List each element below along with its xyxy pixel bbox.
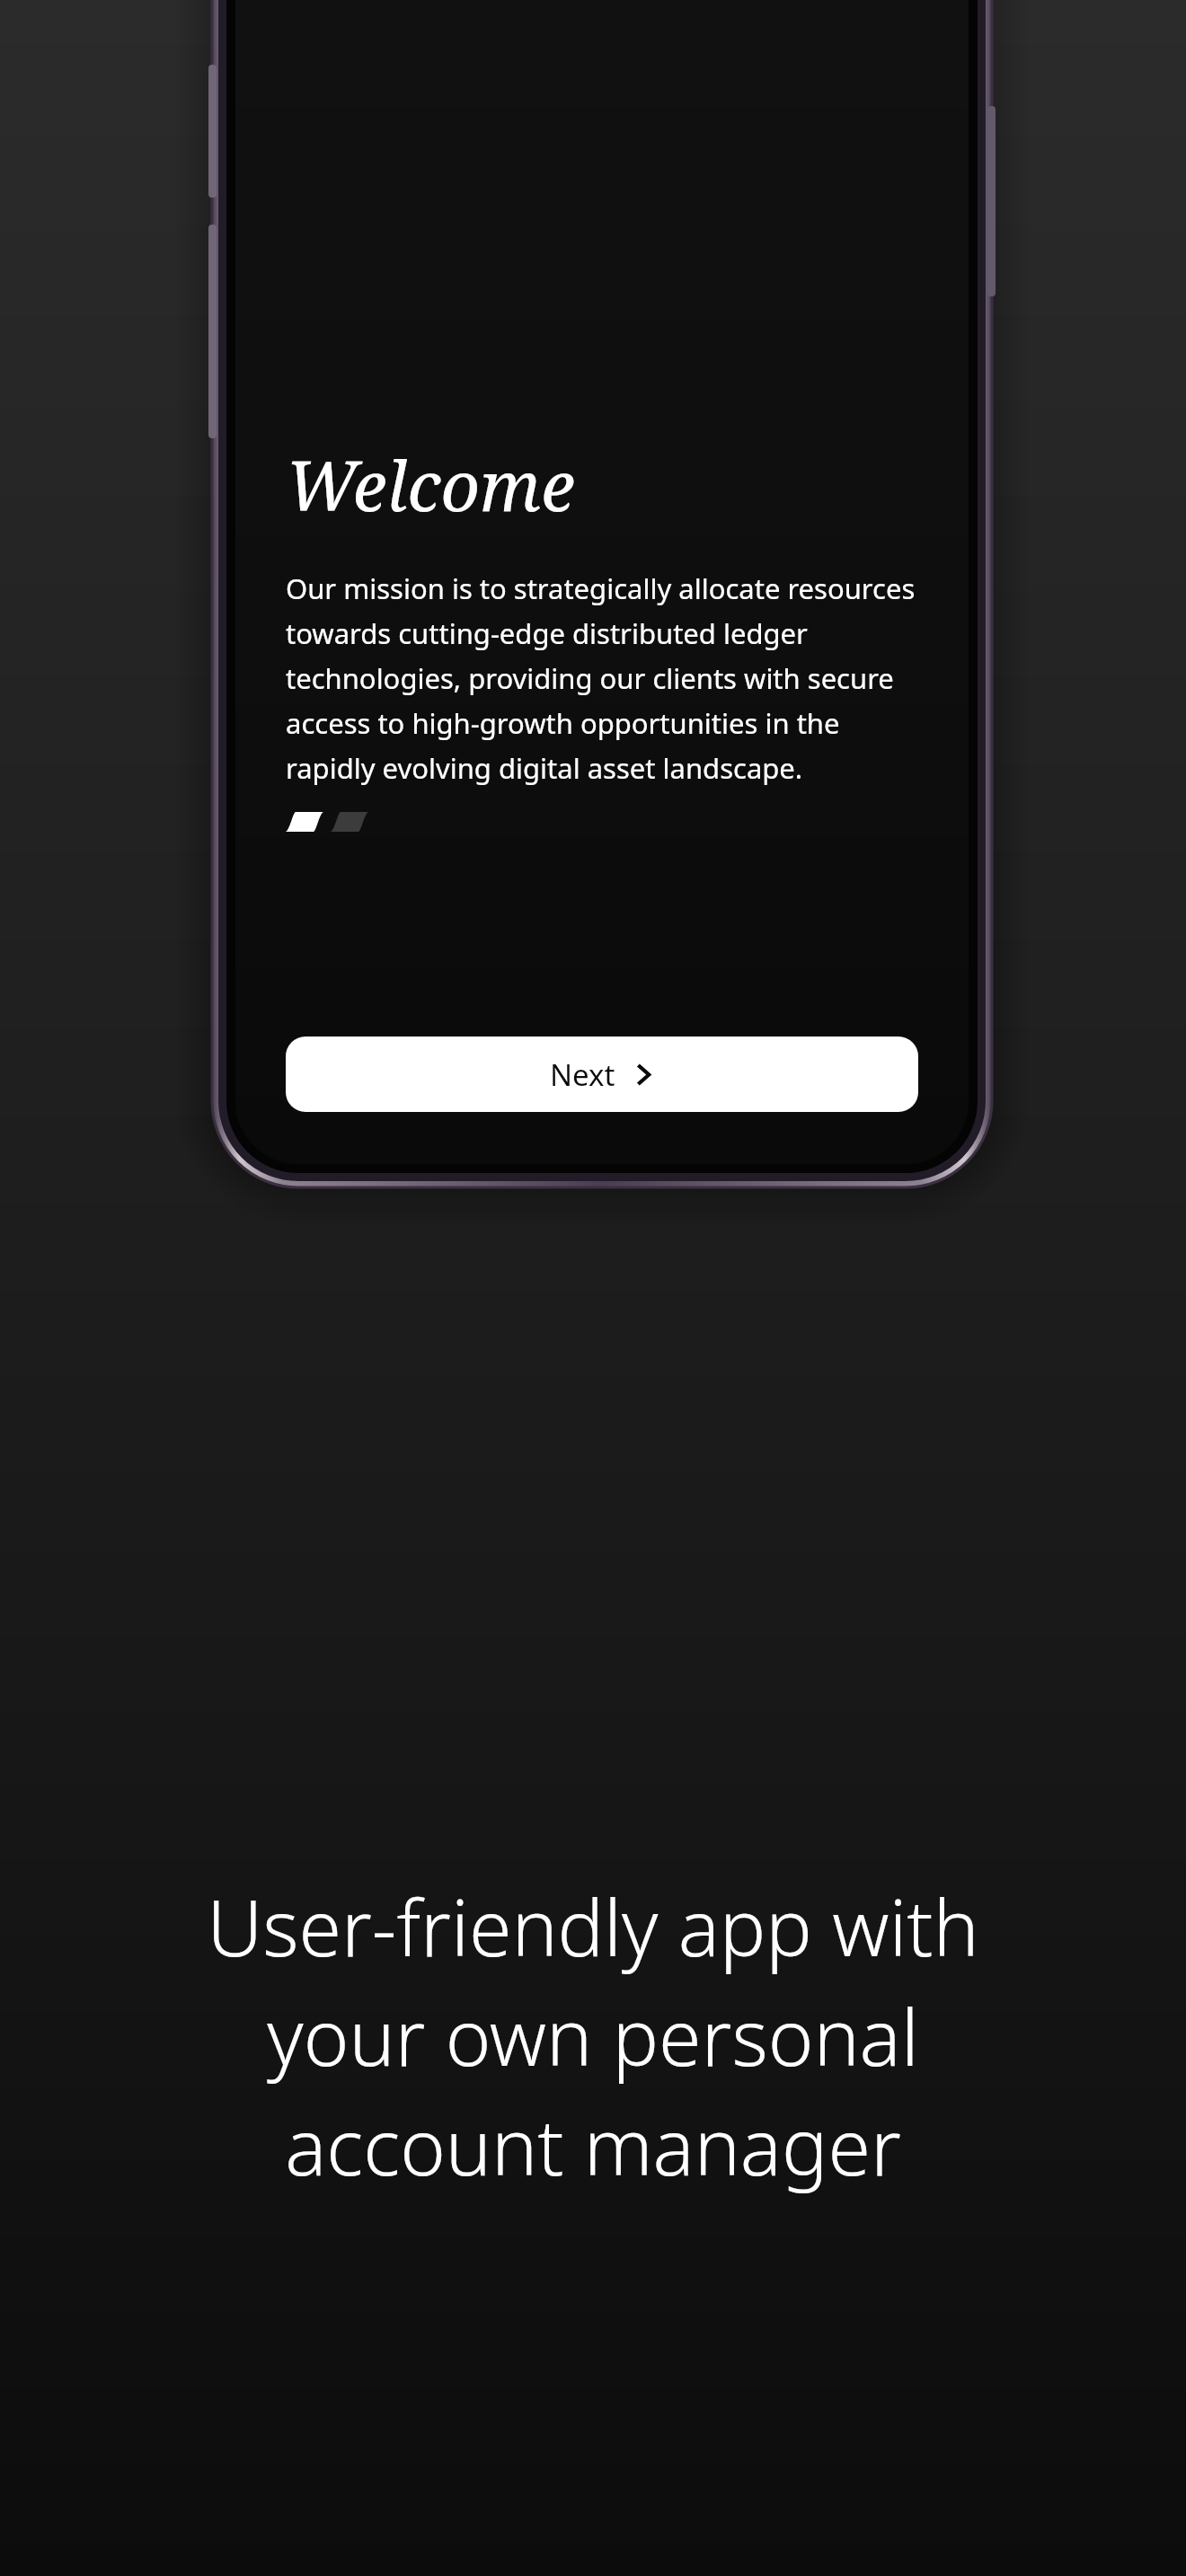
staticText: Our mission is to strategically allocate… <box>286 569 933 787</box>
staticText: Welcome <box>286 438 575 532</box>
staticText: User-friendly app with your own personal… <box>135 1874 1051 2198</box>
button[interactable]: Page 2 of 2 <box>331 812 368 832</box>
button[interactable]: Page 1 of 2 <box>286 812 323 832</box>
button[interactable]: Next <box>286 1037 918 1112</box>
staticText: Next <box>550 1054 615 1095</box>
